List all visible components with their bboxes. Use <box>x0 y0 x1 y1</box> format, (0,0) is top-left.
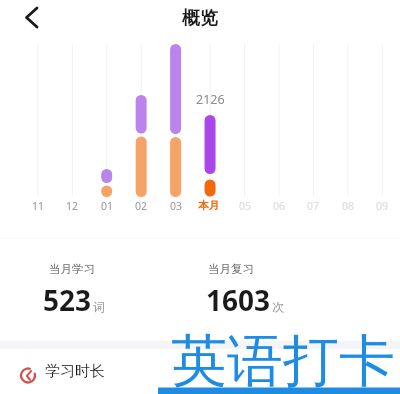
staticText: 词 <box>93 299 105 314</box>
staticText: 06 <box>273 199 286 213</box>
staticText: 本月 <box>198 199 219 212</box>
staticText: 02 <box>135 199 148 213</box>
staticText: 05 <box>239 199 252 213</box>
staticText: 学习时长 <box>45 362 105 381</box>
staticText: 当月复习 <box>208 262 254 276</box>
staticText: 英语打卡 <box>171 326 395 394</box>
staticText: 01 <box>101 199 114 213</box>
staticText: 当月学习 <box>49 262 95 276</box>
staticText: 07 <box>307 199 320 213</box>
staticText: 08 <box>342 199 355 213</box>
staticText: 1603 <box>206 281 271 319</box>
staticText: 523 <box>43 281 92 319</box>
staticText: 概览 <box>182 7 218 30</box>
button[interactable]: 学习时长 <box>0 352 400 394</box>
button[interactable] <box>16 4 44 32</box>
staticText: 12 <box>66 199 79 213</box>
staticText: 09 <box>376 199 389 213</box>
staticText: 2126 <box>196 91 225 108</box>
staticText: 11 <box>32 199 45 213</box>
staticText: 03 <box>170 199 183 213</box>
staticText: 次 <box>272 299 284 314</box>
